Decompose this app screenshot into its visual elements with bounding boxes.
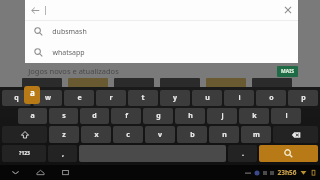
staticText: u [205,93,210,103]
button[interactable]: e [64,90,94,106]
button[interactable]: Back [25,0,45,20]
staticText: m [253,130,260,140]
button[interactable]: i [224,90,254,106]
button[interactable]: MAIS [277,66,298,77]
staticText: h [188,111,193,121]
staticText: o [269,93,274,103]
button[interactable]: o [256,90,286,106]
staticText: i [238,93,241,103]
button[interactable]: f [111,108,141,124]
button[interactable]: dubsmash [25,21,298,42]
button[interactable]: Home [35,167,46,178]
button[interactable]: n [209,126,239,143]
staticText: y [173,93,177,103]
button[interactable]: , [48,145,77,162]
staticText: Jogos novos e atualizados [28,66,119,76]
staticText: dubsmash [52,27,87,37]
button[interactable]: y [160,90,190,106]
button[interactable]: Recents [60,167,71,178]
staticText: t [141,93,145,103]
staticText: j [221,111,224,121]
staticText: d [92,111,97,121]
button[interactable]: q [2,90,31,106]
button[interactable]: p [288,90,318,106]
button[interactable]: j [207,108,237,124]
button[interactable]: v [145,126,175,143]
button[interactable]: h [175,108,205,124]
button[interactable]: r [96,90,126,106]
button[interactable] [68,78,108,96]
staticText: a [30,111,35,121]
staticText: b [190,130,195,140]
staticText: . [242,149,244,159]
staticText: g [156,111,161,121]
button[interactable]: Search [259,145,318,162]
staticText: k [252,111,257,121]
button[interactable] [252,78,292,96]
staticText: r [109,93,113,103]
button[interactable]: Back [10,167,21,178]
staticText: l [285,111,288,121]
button[interactable]: d [80,108,109,124]
button[interactable]: a [18,108,47,124]
button[interactable]: u [192,90,222,106]
staticText: MAIS [281,68,294,75]
button[interactable] [114,78,154,96]
staticText: s [62,111,66,121]
button[interactable]: k [239,108,269,124]
staticText: c [126,130,130,140]
button[interactable]: Clear search [278,0,298,20]
button[interactable]: s [49,108,78,124]
button[interactable]: Shift [2,126,47,143]
staticText: x [94,130,99,140]
staticText: w [45,93,51,103]
staticText: , [62,149,64,159]
button[interactable]: ?123 [2,145,46,162]
staticText: n [222,130,227,140]
staticText: a [30,87,35,98]
button[interactable]: c [113,126,143,143]
staticText: f [125,111,128,121]
button[interactable]: Backspace [273,126,318,143]
button[interactable] [22,78,62,96]
button[interactable] [160,78,200,96]
button[interactable]: t [128,90,158,106]
button[interactable] [206,78,246,96]
staticText: e [77,93,82,103]
staticText: q [14,93,19,103]
button[interactable]: w [33,90,62,106]
button[interactable]: l [271,108,301,124]
button[interactable]: z [49,126,79,143]
button[interactable]: b [177,126,207,143]
button[interactable]: g [143,108,173,124]
button[interactable]: whatsapp [25,42,298,63]
button[interactable]: m [241,126,271,143]
staticText: v [158,130,162,140]
staticText: z [62,130,66,140]
button[interactable]: x [81,126,111,143]
staticText: 23h56 [277,168,297,177]
staticText: whatsapp [52,48,85,58]
staticText: p [301,93,306,103]
staticText: ?123 [19,150,30,157]
button[interactable]: . [228,145,257,162]
